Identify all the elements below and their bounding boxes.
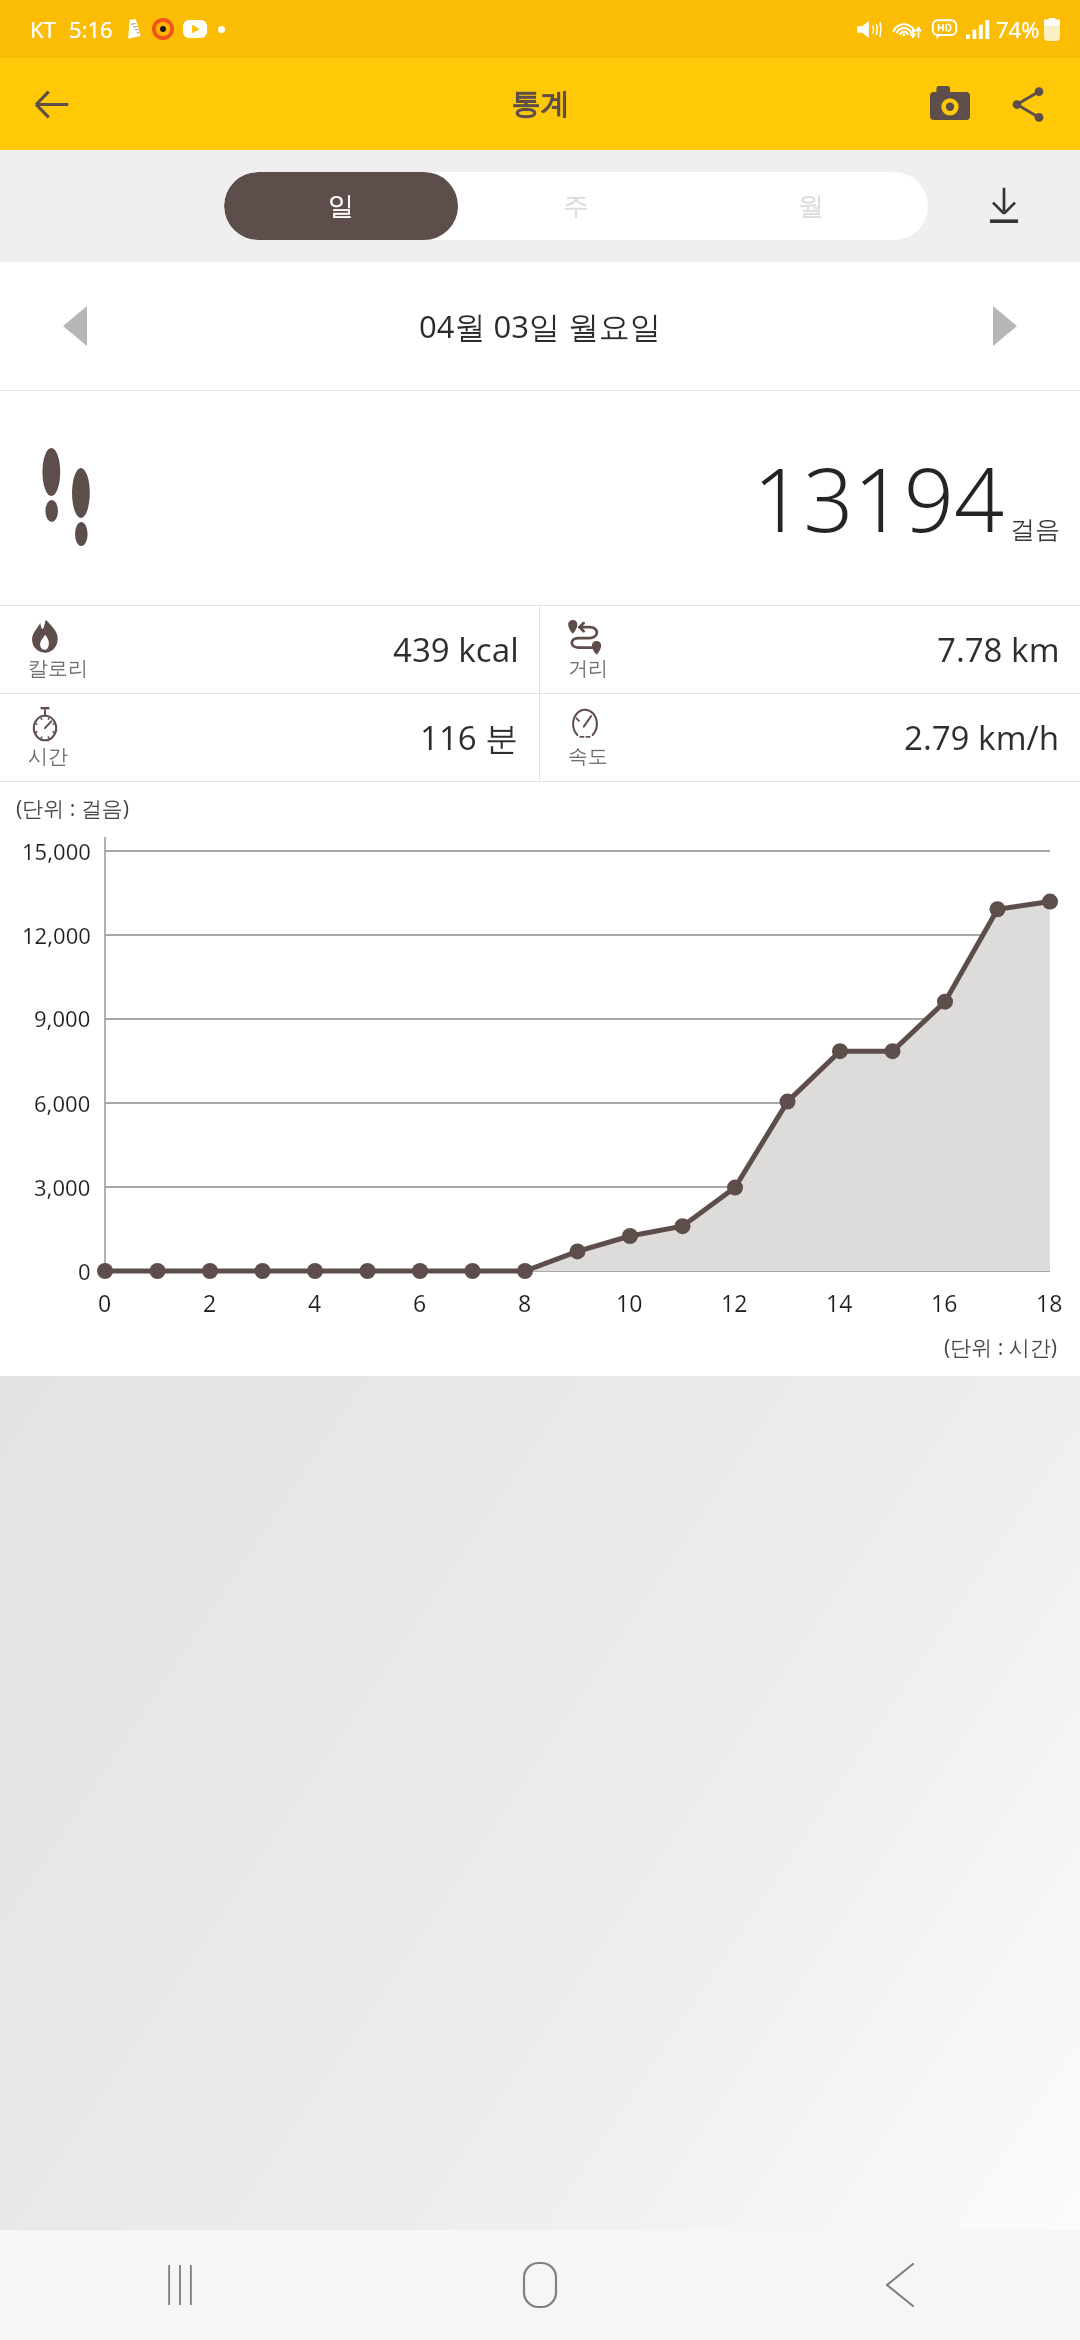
- staticText: 116 분: [420, 715, 519, 760]
- button[interactable]: Share: [996, 72, 1060, 136]
- staticText: 시간: [28, 744, 68, 769]
- button[interactable]: 주: [458, 172, 693, 240]
- button[interactable]: Back: [18, 71, 84, 137]
- button[interactable]: Download: [928, 166, 1080, 246]
- staticText: (단위 : 시간): [944, 1333, 1058, 1362]
- staticText: 14: [826, 1287, 853, 1318]
- staticText: 0: [98, 1287, 112, 1318]
- button[interactable]: Back: [830, 2235, 970, 2335]
- button[interactable]: Recents: [110, 2235, 250, 2335]
- staticText: 74%: [996, 14, 1040, 44]
- staticText: 통계: [511, 86, 569, 123]
- button[interactable]: 13194: [0, 391, 1080, 605]
- button[interactable]: 거리: [540, 606, 1080, 693]
- staticText: 7.78 km: [937, 627, 1060, 672]
- button[interactable]: 칼로리: [0, 606, 539, 693]
- staticText: 4: [308, 1287, 322, 1318]
- button[interactable]: 속도: [540, 694, 1080, 781]
- staticText: 월: [798, 190, 824, 223]
- staticText: 16: [931, 1287, 958, 1318]
- button[interactable]: Home: [470, 2235, 610, 2335]
- button[interactable]: 시간: [0, 694, 539, 781]
- staticText: 8: [518, 1287, 532, 1318]
- staticText: 439 kcal: [393, 627, 519, 672]
- staticText: 15,000: [22, 836, 91, 866]
- staticText: 걸음: [1010, 514, 1060, 545]
- button[interactable]: Next day: [930, 262, 1080, 390]
- staticText: 12: [721, 1287, 748, 1318]
- staticText: 10: [616, 1287, 643, 1318]
- staticText: 속도: [568, 744, 608, 769]
- button[interactable]: Camera: [918, 72, 982, 136]
- staticText: 18: [1036, 1287, 1063, 1318]
- staticText: 2: [203, 1287, 217, 1318]
- staticText: 12,000: [22, 920, 91, 950]
- staticText: 13194: [753, 438, 1005, 558]
- staticText: 거리: [568, 656, 608, 681]
- staticText: 6,000: [34, 1088, 91, 1118]
- staticText: 5:16: [69, 14, 113, 44]
- staticText: 칼로리: [28, 656, 88, 681]
- button[interactable]: Previous day: [0, 262, 150, 390]
- staticText: 04월 03일 월요일: [419, 305, 662, 347]
- staticText: (단위 : 걸음): [16, 794, 130, 823]
- button[interactable]: 일: [224, 172, 458, 240]
- staticText: 일: [328, 190, 354, 223]
- staticText: 3,000: [34, 1172, 91, 1202]
- staticText: 0: [78, 1256, 91, 1286]
- staticText: 9,000: [34, 1003, 91, 1033]
- staticText: 2.79 km/h: [904, 715, 1060, 760]
- staticText: KT: [30, 14, 56, 44]
- staticText: 주: [563, 190, 589, 223]
- staticText: 6: [413, 1287, 427, 1318]
- button[interactable]: 월: [693, 172, 928, 240]
